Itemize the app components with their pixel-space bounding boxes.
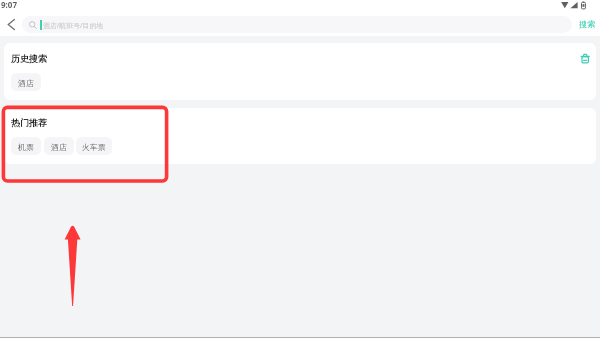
staticText: 历史搜索 — [11, 53, 47, 64]
button[interactable]: 搜索 — [572, 13, 600, 35]
button[interactable]: 酒店/航班号/目的地 — [22, 16, 572, 33]
button[interactable]: Clear history — [579, 53, 591, 65]
button[interactable]: 火车票 — [76, 137, 112, 155]
staticText: 机票 — [18, 142, 34, 152]
staticText: 搜索 — [579, 19, 596, 29]
button[interactable]: 酒店 — [44, 137, 74, 155]
staticText: 酒店 — [51, 142, 67, 152]
staticText: 酒店 — [18, 78, 34, 88]
button[interactable]: 酒店 — [11, 73, 41, 91]
button[interactable]: 机票 — [11, 137, 41, 155]
staticText: 酒店/航班号/目的地 — [43, 21, 104, 30]
button[interactable]: Back — [0, 13, 22, 35]
staticText: 9:07 — [1, 0, 17, 10]
staticText: 火车票 — [82, 142, 106, 152]
staticText: 热门推荐 — [11, 117, 47, 128]
